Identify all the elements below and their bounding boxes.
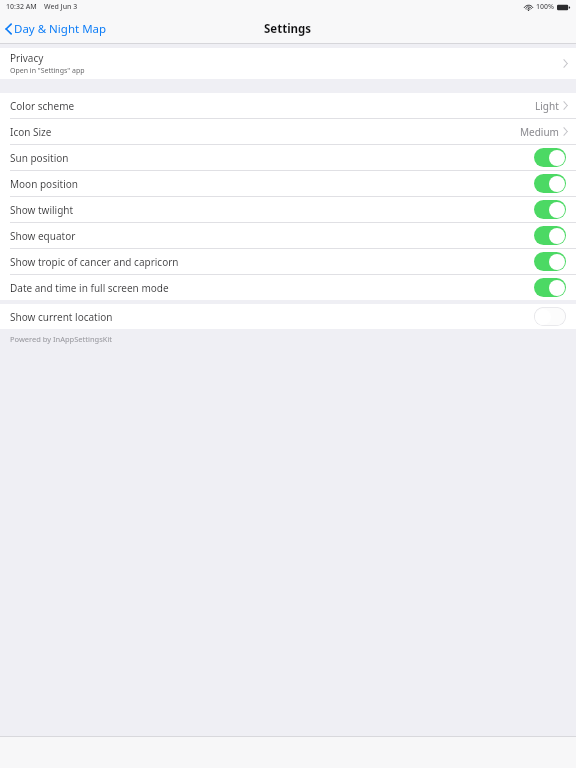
button[interactable]: Show current location (0, 304, 576, 329)
button[interactable]: Icon Size (0, 119, 576, 144)
button[interactable]: Day & Night Map (0, 17, 115, 41)
staticText: 10:32 AM (6, 2, 37, 12)
other: On (534, 278, 566, 297)
staticText: Show equator (10, 229, 534, 243)
button[interactable]: Show equator (0, 223, 576, 248)
staticText: Powered by InAppSettingsKit (10, 334, 113, 344)
button[interactable]: Sun position (0, 145, 576, 170)
staticText: Day & Night Map (14, 21, 107, 37)
button[interactable]: Moon position (0, 171, 576, 196)
staticText: Show tropic of cancer and capricorn (10, 255, 534, 269)
staticText: Icon Size (10, 125, 520, 139)
other: On (534, 252, 566, 271)
button[interactable]: Date and time in full screen mode (0, 275, 576, 300)
staticText: 100% (536, 2, 554, 12)
staticText: Settings (264, 21, 312, 37)
button[interactable]: Show tropic of cancer and capricorn (0, 249, 576, 274)
staticText: Open in "Settings" app (10, 66, 85, 76)
other: On (534, 226, 566, 245)
staticText: Color scheme (10, 99, 535, 113)
other: On (534, 148, 566, 167)
staticText: Light (535, 99, 559, 113)
button[interactable]: Privacy (0, 48, 576, 79)
other: Off (534, 307, 566, 326)
staticText: Wed Jun 3 (44, 2, 78, 12)
other: On (534, 174, 566, 193)
other: On (534, 200, 566, 219)
staticText: Privacy (10, 51, 44, 65)
staticText: Show current location (10, 310, 534, 324)
staticText: Sun position (10, 151, 534, 165)
staticText: Show twilight (10, 203, 534, 217)
button[interactable]: Show twilight (0, 197, 576, 222)
staticText: Date and time in full screen mode (10, 281, 534, 295)
staticText: Moon position (10, 177, 534, 191)
button[interactable]: Color scheme (0, 93, 576, 118)
staticText: Medium (520, 125, 559, 139)
